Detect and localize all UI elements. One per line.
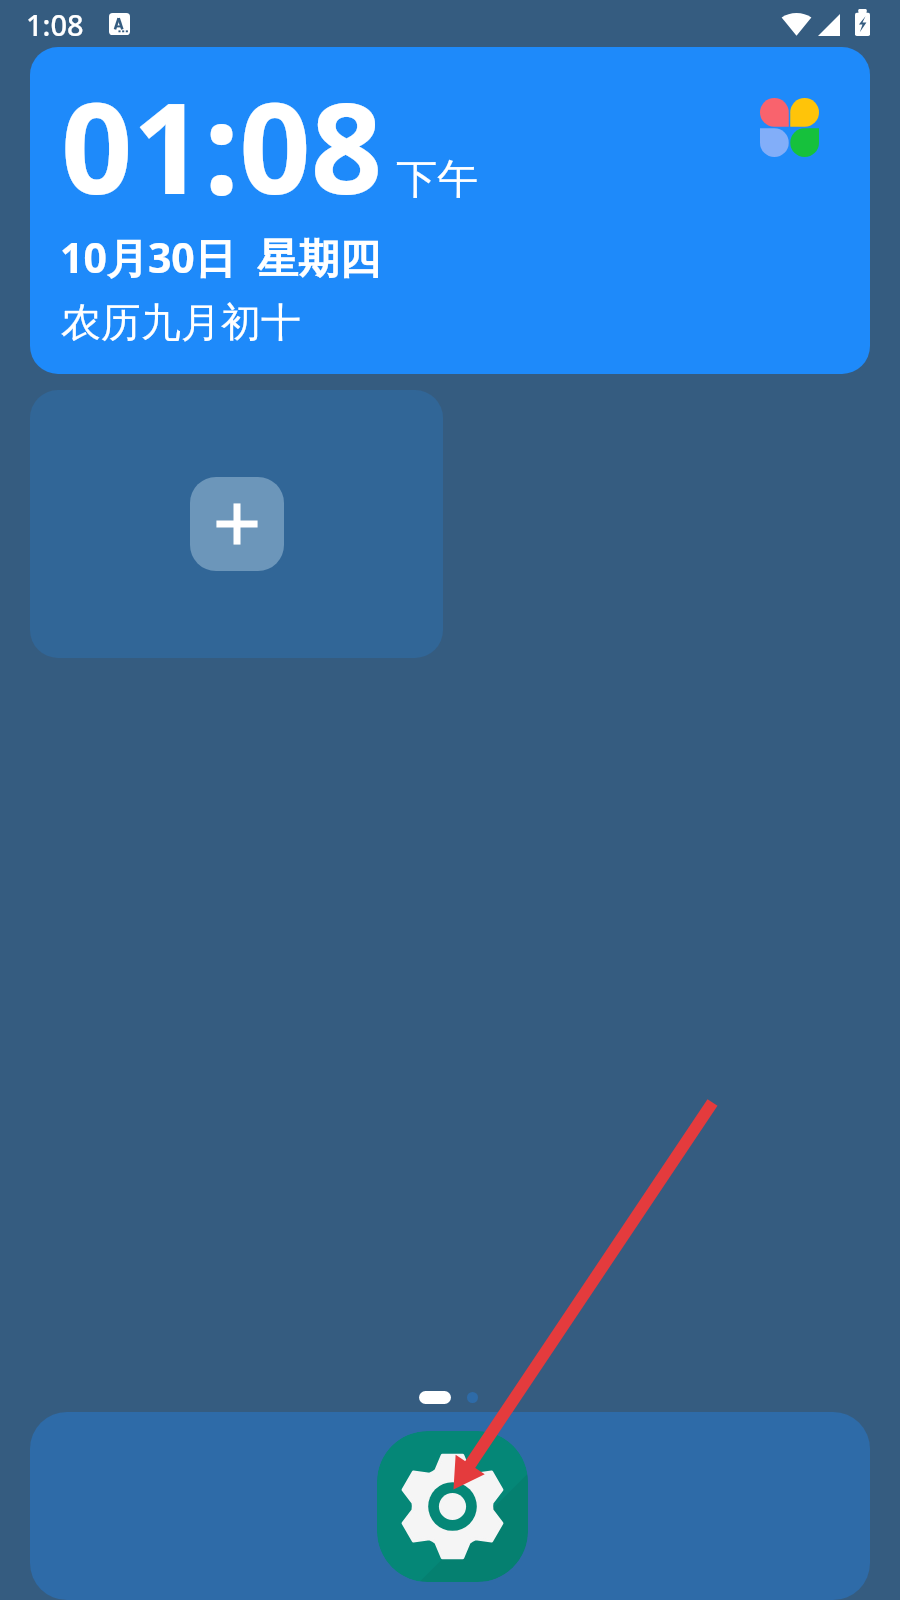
button[interactable]: Add widget: [30, 390, 443, 658]
staticText: 01:08: [61, 60, 383, 230]
button[interactable]: Add widget: [190, 477, 284, 571]
staticText: 下午: [396, 154, 478, 206]
other: Input method: [109, 13, 130, 35]
button[interactable]: Home screen page 1: [419, 1391, 451, 1404]
button[interactable]: Settings: [377, 1431, 528, 1582]
button[interactable]: Home screen page 2: [467, 1392, 478, 1403]
staticText: 农历九月初十: [61, 297, 301, 347]
button[interactable]: 01:08: [30, 47, 870, 374]
staticText: 10月30日 星期四: [60, 229, 381, 285]
staticText: 1:08: [26, 5, 84, 44]
